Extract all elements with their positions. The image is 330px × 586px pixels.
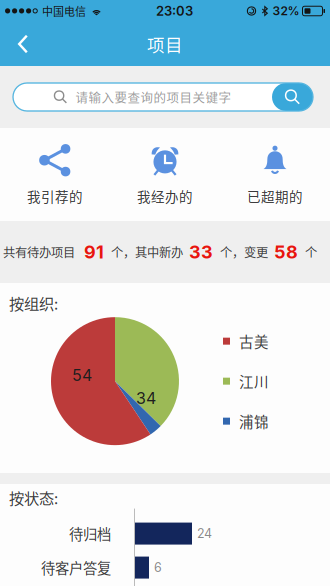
staticText: 待归档 [69, 523, 111, 544]
staticText: 34 [136, 388, 156, 408]
staticText: 6 [154, 560, 162, 575]
staticText: 古美 [239, 331, 269, 352]
button[interactable]: Search [272, 83, 313, 111]
staticText: 我引荐的 [27, 186, 83, 206]
staticText: 24 [197, 526, 212, 541]
button[interactable]: 我经办的 [110, 128, 220, 221]
staticText: 待客户答复 [41, 557, 111, 578]
button[interactable]: 已超期的 [220, 128, 330, 221]
button[interactable]: 我引荐的 [0, 128, 110, 221]
staticText: 按组织: [9, 292, 58, 314]
staticText: 33 [189, 241, 213, 263]
staticText: 个，其中新办 [111, 243, 183, 261]
staticText: 23:03 [156, 3, 193, 19]
staticText: 项目 [147, 31, 183, 57]
staticText: 个，变更 [220, 243, 268, 261]
staticText: 58 [274, 241, 298, 263]
button[interactable]: Back [0, 21, 46, 66]
staticText: 32% [272, 4, 299, 18]
staticText: 54 [72, 365, 92, 385]
staticText: 个 [305, 243, 317, 261]
staticText: 共有待办项目 [3, 243, 75, 261]
staticText: 请输入要查询的项目关键字 [75, 88, 231, 106]
staticText: 91 [84, 241, 104, 263]
staticText: 浦锦 [239, 411, 269, 432]
staticText: 我经办的 [137, 186, 193, 206]
staticText: 按状态: [9, 486, 58, 509]
staticText: 已超期的 [247, 186, 303, 206]
staticText: 中国电信 [42, 3, 86, 19]
staticText: 江川 [239, 371, 269, 392]
